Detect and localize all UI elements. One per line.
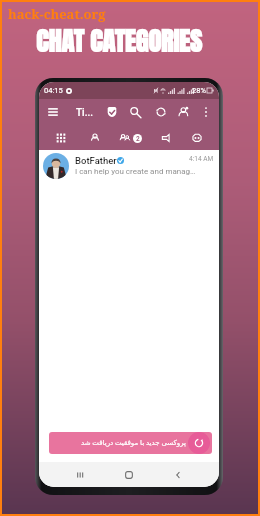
button[interactable]: 2 unread groups <box>133 134 142 143</box>
button[interactable]: Private chats <box>88 131 102 145</box>
button[interactable]: Back <box>170 467 186 483</box>
button[interactable]: Recents <box>72 467 88 483</box>
button[interactable]: Channels <box>159 131 173 145</box>
button[interactable]: Add contact <box>176 104 192 120</box>
button[interactable]: Bots <box>190 131 204 145</box>
button[interactable]: Search <box>127 104 143 120</box>
staticText: 2 <box>136 135 140 143</box>
staticText: hack-cheat.org <box>8 5 106 23</box>
button[interactable]: All chats <box>54 131 68 145</box>
staticText: 04:15 <box>44 86 63 95</box>
staticText: 28% <box>192 86 206 95</box>
button[interactable]: Home <box>121 467 137 483</box>
button[interactable]: More options <box>199 105 213 119</box>
staticText: CHAT CATEGORIES <box>36 21 202 60</box>
button[interactable]: BotFather <box>39 150 219 182</box>
staticText: Ti... <box>76 107 93 119</box>
staticText: پروکسی جدید با موفقیت دریافت شد <box>81 438 186 448</box>
button[interactable]: Refresh proxy <box>188 432 210 454</box>
staticText: 4:14 AM <box>189 155 214 163</box>
button[interactable]: Menu <box>45 104 61 120</box>
button[interactable]: Group chats <box>118 131 132 145</box>
button[interactable]: پروکسی جدید با موفقیت دریافت شد <box>49 432 212 454</box>
staticText: I can help you create and manag… <box>75 167 196 176</box>
staticText: BotFather <box>75 155 117 166</box>
button[interactable]: Verified <box>104 104 120 120</box>
button[interactable]: Sync <box>153 104 169 120</box>
